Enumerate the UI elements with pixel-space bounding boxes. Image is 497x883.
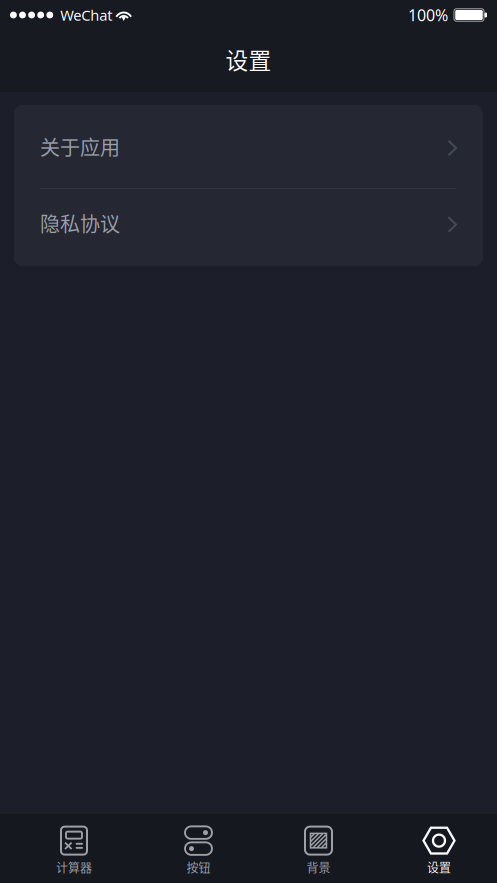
staticText: 隐私协议	[40, 208, 120, 237]
staticText: WeChat	[60, 5, 112, 25]
button[interactable]: 关于应用	[14, 105, 483, 188]
staticText: 背景	[306, 859, 330, 876]
staticText: 按钮	[186, 859, 210, 876]
button[interactable]: 设置	[388, 814, 490, 883]
staticText: 计算器	[56, 859, 92, 876]
staticText: 设置	[427, 859, 451, 876]
staticText: 100%	[408, 4, 448, 26]
staticText: 关于应用	[40, 132, 120, 161]
button[interactable]: 计算器	[0, 814, 148, 883]
button[interactable]: 背景	[249, 814, 388, 883]
staticText: 设置	[225, 43, 271, 75]
button[interactable]: 隐私协议	[14, 189, 483, 266]
button[interactable]: 按钮	[148, 814, 249, 883]
